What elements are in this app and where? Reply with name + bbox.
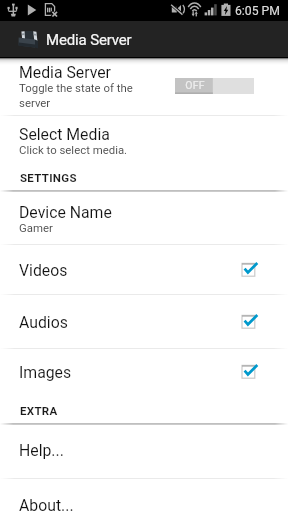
staticText: Media Server [46, 31, 132, 49]
staticText: Images [19, 363, 72, 382]
staticText: 6:05 PM [235, 4, 280, 18]
staticText: Media Server [19, 63, 111, 82]
staticText: OFF [185, 79, 205, 91]
staticText: SETTINGS [20, 171, 77, 184]
button[interactable]: Media Server [0, 57, 288, 115]
staticText: Audios [19, 313, 68, 332]
button[interactable]: Toggle media server [175, 78, 254, 94]
staticText: About... [19, 496, 74, 512]
button[interactable]: Media Server [0, 21, 288, 57]
staticText: Gamer [19, 221, 219, 234]
staticText: Videos [19, 261, 68, 280]
button[interactable]: Select Media [0, 115, 288, 161]
button[interactable]: Images [0, 348, 288, 394]
other: Media Server [17, 29, 39, 51]
staticText: EXTRA [20, 404, 58, 417]
staticText: Select Media [19, 125, 110, 144]
staticText: Click to select media. [19, 143, 219, 156]
button[interactable]: Videos [0, 244, 288, 294]
button[interactable]: Device Name [0, 190, 288, 243]
button[interactable]: Audios [0, 294, 288, 348]
button[interactable]: Help... [0, 423, 288, 478]
staticText: Device Name [19, 203, 112, 222]
staticText: Toggle the state of the server [19, 81, 155, 109]
staticText: Help... [19, 441, 64, 460]
button[interactable]: About... [0, 478, 288, 512]
